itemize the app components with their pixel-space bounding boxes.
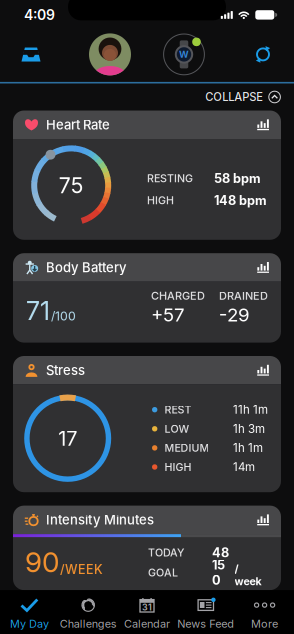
button[interactable]: COLLAPSE	[205, 83, 294, 110]
staticText: 1h 3m	[233, 422, 265, 436]
button[interactable]: News Feed	[176, 590, 235, 634]
staticText: 148 bpm	[214, 193, 267, 208]
staticText: Intensity Minutes	[46, 512, 154, 528]
staticText: 4:09	[24, 6, 55, 23]
staticText: 90	[25, 545, 59, 579]
staticText: Stress	[46, 362, 85, 378]
staticText: HIGH	[164, 460, 191, 473]
staticText: MEDIUM	[164, 441, 209, 454]
button[interactable]: Heart Rate	[13, 110, 281, 240]
staticText: 17	[58, 426, 77, 450]
button[interactable]: Sync	[232, 27, 294, 82]
staticText: W	[179, 49, 189, 60]
staticText: /week	[234, 562, 261, 588]
staticText: 1h 1m	[233, 441, 263, 455]
staticText: /100	[51, 309, 76, 323]
staticText: GOAL	[148, 566, 178, 579]
button[interactable]: Stress	[13, 356, 281, 492]
button[interactable]: More	[235, 590, 294, 634]
button[interactable]: 31	[118, 590, 176, 634]
staticText: More	[251, 617, 278, 630]
staticText: 75	[59, 172, 84, 198]
staticText: HIGH	[147, 194, 174, 207]
button[interactable]: Profile	[84, 27, 136, 82]
staticText: Challenges	[60, 617, 117, 630]
staticText: -29	[219, 303, 250, 326]
staticText: 150	[212, 557, 225, 588]
button[interactable]: Inbox	[0, 27, 62, 82]
button[interactable]: Intensity Minutes	[13, 506, 281, 590]
staticText: RESTING	[147, 172, 193, 185]
staticText: LOW	[164, 422, 189, 435]
staticText: COLLAPSE	[205, 90, 263, 104]
staticText: REST	[164, 403, 191, 416]
staticText: 14m	[233, 460, 255, 474]
staticText: Calendar	[124, 617, 170, 630]
staticText: TODAY	[148, 546, 184, 559]
staticText: My Day	[10, 617, 49, 630]
staticText: News Feed	[177, 617, 234, 630]
staticText: 31	[142, 602, 152, 613]
staticText: Body Battery	[46, 259, 127, 275]
staticText: /WEEK	[60, 562, 103, 577]
staticText: DRAINED	[219, 289, 268, 302]
staticText: CHARGED	[151, 289, 205, 302]
staticText: 48	[212, 545, 229, 560]
button[interactable]: Device status	[158, 27, 210, 82]
staticText: +57	[151, 303, 185, 326]
button[interactable]: My Day	[0, 590, 59, 634]
button[interactable]: Challenges	[59, 590, 118, 634]
staticText: 11h 1m	[233, 403, 268, 417]
staticText: 58 bpm	[214, 171, 261, 186]
staticText: 71	[26, 295, 50, 326]
staticText: Heart Rate	[46, 117, 110, 133]
button[interactable]: Body Battery	[13, 253, 281, 343]
